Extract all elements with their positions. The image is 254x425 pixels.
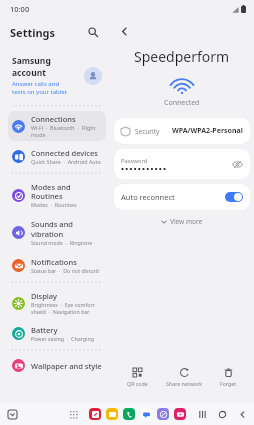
staticText: Answer calls and	[12, 80, 60, 88]
staticText: Quick Share · Android Auto	[31, 158, 101, 165]
staticText: Share network	[166, 380, 203, 387]
button[interactable]: Recent apps tray	[6, 408, 18, 420]
staticText: Connections	[31, 114, 76, 124]
button[interactable]: View more	[114, 217, 250, 226]
button[interactable]: Auto reconnect	[114, 184, 250, 210]
button[interactable]: App	[140, 408, 152, 420]
staticText: View more	[170, 217, 203, 226]
button[interactable]: Security	[114, 118, 250, 144]
button[interactable]: Forget	[215, 365, 242, 389]
button[interactable]: App	[106, 408, 118, 420]
staticText: shield · Navigation bar	[31, 308, 90, 315]
staticText: Security	[135, 127, 160, 136]
button[interactable]: App	[174, 408, 186, 420]
button[interactable]: Notifications	[8, 254, 106, 277]
button[interactable]: Home	[217, 409, 228, 420]
button[interactable]: Share network	[161, 365, 208, 389]
staticText: Power saving · Charging	[31, 335, 94, 342]
staticText: Connected	[164, 98, 200, 108]
button[interactable]: Sounds and	[8, 216, 106, 249]
button[interactable]: Recents	[197, 409, 208, 420]
button[interactable]: Battery	[8, 322, 106, 345]
button[interactable]: App	[157, 408, 169, 420]
button[interactable]: Wallpaper and style	[8, 356, 106, 375]
staticText: texts on your tablet	[12, 88, 67, 96]
staticText: Display	[31, 291, 58, 301]
staticText: QR code	[127, 380, 148, 387]
button[interactable]: App	[89, 408, 101, 420]
staticText: Password	[121, 157, 148, 165]
button[interactable]: Connected devices	[8, 145, 106, 168]
staticText: WPA/WPA2-Personal	[172, 126, 243, 136]
staticText: vibration	[31, 229, 64, 239]
button[interactable]: Back	[237, 409, 248, 420]
button[interactable]: Search	[84, 23, 102, 41]
button[interactable]: App	[123, 408, 135, 420]
staticText: Brightness · Eye comfort	[31, 301, 95, 308]
button[interactable]: Modes and Routines	[8, 179, 106, 211]
staticText: Auto reconnect	[121, 192, 175, 202]
staticText: Sound mode · Ringtone	[31, 239, 93, 246]
staticText: mode	[31, 131, 46, 138]
staticText: Samsung	[12, 55, 51, 67]
button[interactable]: QR code	[122, 365, 153, 389]
button[interactable]: Back	[114, 21, 134, 41]
staticText: Battery	[31, 325, 58, 335]
button[interactable]: Display	[8, 288, 106, 318]
staticText: Modes and Routines	[31, 182, 102, 201]
button[interactable]: Samsung	[8, 51, 106, 100]
staticText: Wi-Fi · Bluetooth · Flight	[31, 124, 96, 131]
staticText: Sounds and	[31, 219, 73, 229]
staticText: Wallpaper and style	[31, 361, 102, 371]
staticText: Speedperform	[134, 47, 230, 66]
staticText: account	[12, 67, 46, 79]
staticText: Status bar · Do not disturb	[31, 267, 100, 274]
button[interactable]: All apps	[68, 409, 78, 419]
button[interactable]: Show password	[231, 158, 243, 170]
staticText: 10:00	[10, 4, 30, 14]
button[interactable]: Password	[114, 149, 250, 179]
staticText: Settings	[10, 25, 56, 40]
staticText: Forget	[220, 380, 237, 387]
button[interactable]: Connections	[8, 111, 106, 141]
staticText: Modes · Routines	[31, 201, 77, 208]
staticText: Connected devices	[31, 148, 98, 158]
staticText: Notifications	[31, 257, 77, 267]
